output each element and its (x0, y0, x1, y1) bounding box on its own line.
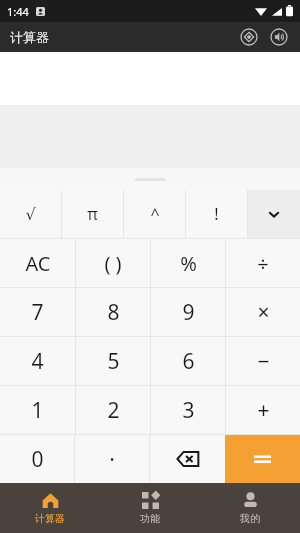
staticText: % (180, 250, 197, 277)
button[interactable]: 功能 (100, 483, 200, 533)
staticText: AC (25, 250, 51, 277)
staticText: 8 (107, 298, 120, 327)
staticText: × (257, 298, 270, 327)
button[interactable]: 我的 (200, 483, 300, 533)
staticText: 7 (31, 298, 44, 327)
staticText: 1 (31, 396, 44, 425)
button[interactable]: 6 (151, 337, 225, 385)
button[interactable]: ! (186, 190, 247, 238)
button[interactable]: % (151, 239, 225, 287)
button[interactable]: × (226, 288, 300, 336)
button[interactable]: ^ (124, 190, 185, 238)
button[interactable]: ( ) (76, 239, 150, 287)
button[interactable]: · (75, 435, 149, 483)
staticText: 功能 (140, 512, 160, 525)
button[interactable]: √ (0, 190, 61, 238)
staticText: 我的 (240, 512, 260, 525)
staticText: 9 (182, 298, 195, 327)
button[interactable]: 9 (151, 288, 225, 336)
button[interactable]: 5 (76, 337, 150, 385)
staticText: 计算器 (10, 29, 49, 45)
button[interactable]: Backspace (150, 435, 225, 483)
button[interactable]: − (226, 337, 300, 385)
staticText: + (257, 396, 270, 425)
button[interactable]: 4 (0, 337, 75, 385)
button[interactable]: ÷ (226, 239, 300, 287)
staticText: 5 (107, 347, 120, 376)
button[interactable]: Collapse (248, 190, 300, 238)
button[interactable]: 1 (0, 386, 75, 434)
staticText: 2 (107, 396, 120, 425)
staticText: ÷ (257, 250, 269, 277)
button[interactable] (225, 435, 300, 483)
staticText: 1:44 (7, 4, 29, 19)
button[interactable]: 0 (0, 435, 74, 483)
staticText: √ (25, 205, 36, 224)
staticText: ! (214, 203, 219, 225)
staticText: 6 (182, 347, 195, 376)
staticText: · (109, 445, 115, 474)
staticText: 0 (31, 445, 44, 474)
staticText: ( ) (104, 250, 122, 277)
staticText: 3 (182, 396, 195, 425)
button[interactable]: Theme (238, 26, 260, 48)
button[interactable]: 7 (0, 288, 75, 336)
staticText: ^ (150, 203, 160, 225)
button[interactable]: π (62, 190, 123, 238)
button[interactable]: 计算器 (0, 483, 100, 533)
button[interactable]: 8 (76, 288, 150, 336)
button[interactable]: 3 (151, 386, 225, 434)
button[interactable]: Sound (268, 26, 290, 48)
staticText: 4 (31, 347, 44, 376)
staticText: − (257, 347, 270, 376)
button[interactable]: + (226, 386, 300, 434)
staticText: 计算器 (35, 512, 65, 525)
button[interactable]: AC (0, 239, 75, 287)
staticText: π (87, 203, 98, 225)
button[interactable]: 2 (76, 386, 150, 434)
